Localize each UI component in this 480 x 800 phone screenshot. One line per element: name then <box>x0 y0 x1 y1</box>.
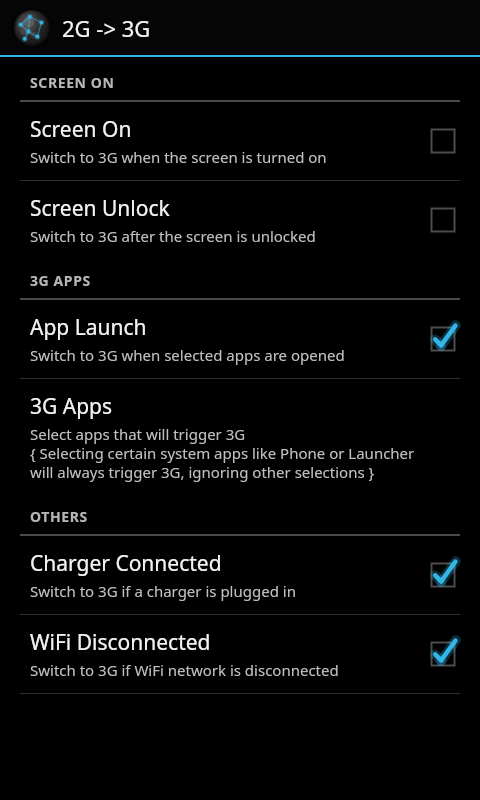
staticText: Switch to 3G if a charger is plugged in <box>30 581 296 601</box>
staticText: Switch to 3G when selected apps are open… <box>30 345 345 365</box>
button[interactable]: Unchecked <box>426 203 460 237</box>
staticText: 3G APPS <box>30 271 91 290</box>
staticText: WiFi Disconnected <box>30 628 211 657</box>
staticText: Switch to 3G after the screen is unlocke… <box>30 226 316 246</box>
button[interactable]: Screen Unlock <box>0 181 480 259</box>
staticText: OTHERS <box>30 507 88 526</box>
staticText: Screen Unlock <box>30 194 170 223</box>
button[interactable]: 3G Apps <box>0 379 480 495</box>
staticText: 2G -> 3G <box>62 13 151 43</box>
button[interactable]: Checked <box>426 558 460 592</box>
staticText: Select apps that will trigger 3G { Selec… <box>30 424 424 482</box>
staticText: Switch to 3G if WiFi network is disconne… <box>30 660 339 680</box>
button[interactable]: Screen On <box>0 102 480 180</box>
button[interactable]: App Launch <box>0 300 480 378</box>
button[interactable]: Checked <box>426 637 460 671</box>
button[interactable]: Unchecked <box>426 124 460 158</box>
staticText: Screen On <box>30 115 132 144</box>
staticText: Switch to 3G when the screen is turned o… <box>30 147 327 167</box>
staticText: SCREEN ON <box>30 73 115 92</box>
button[interactable]: Checked <box>426 322 460 356</box>
staticText: App Launch <box>30 313 147 342</box>
staticText: Charger Connected <box>30 549 222 578</box>
button[interactable]: Charger Connected <box>0 536 480 614</box>
staticText: 3G Apps <box>30 392 113 421</box>
button[interactable]: WiFi Disconnected <box>0 615 480 693</box>
